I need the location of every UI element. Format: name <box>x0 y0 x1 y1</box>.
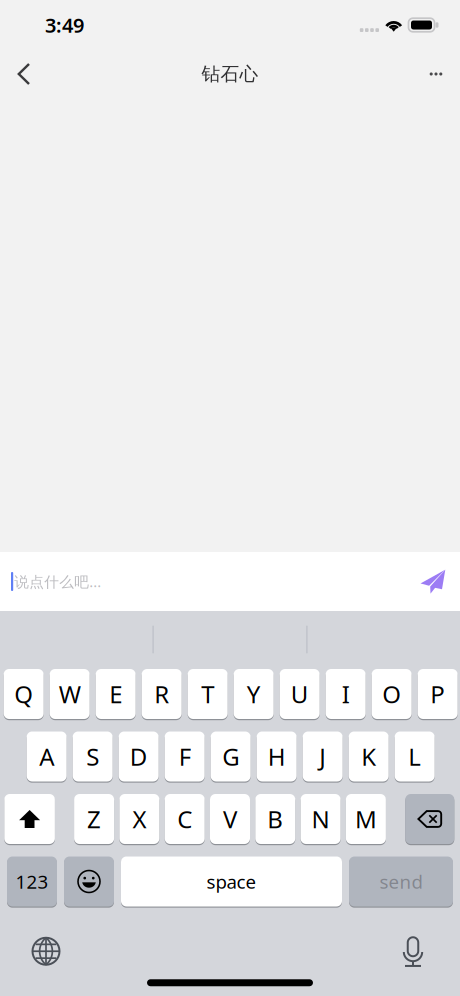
staticText: Q <box>14 678 33 710</box>
button[interactable]: V <box>210 793 250 845</box>
staticText: I <box>342 678 350 710</box>
button[interactable]: Emoji <box>64 856 114 907</box>
button[interactable]: B <box>255 793 295 845</box>
staticText: F <box>179 741 191 772</box>
staticText: L <box>408 741 421 772</box>
staticText: E <box>109 678 122 710</box>
staticText: U <box>291 678 309 710</box>
staticText: G <box>222 741 239 772</box>
staticText: R <box>154 678 169 710</box>
button[interactable]: Send message <box>412 555 454 607</box>
button[interactable]: C <box>165 793 205 845</box>
staticText: T <box>201 678 214 710</box>
button[interactable]: D <box>119 731 159 782</box>
staticText: 3:49 <box>45 12 84 38</box>
button[interactable]: More options <box>413 51 459 97</box>
staticText: V <box>223 803 237 835</box>
button[interactable]: E <box>96 668 136 720</box>
button[interactable]: I <box>326 668 366 720</box>
staticText: send <box>379 869 422 894</box>
button[interactable]: Shift <box>4 793 55 845</box>
button[interactable]: N <box>301 793 341 845</box>
staticText: A <box>39 741 54 772</box>
button[interactable]: Back <box>1 51 47 97</box>
staticText: W <box>59 678 81 710</box>
staticText: C <box>177 803 192 835</box>
staticText: N <box>312 803 330 835</box>
staticText: space <box>206 869 256 894</box>
staticText: S <box>86 741 99 772</box>
button[interactable]: X <box>119 793 159 845</box>
staticText: B <box>267 803 283 835</box>
staticText: 123 <box>15 869 48 894</box>
button[interactable]: Y <box>234 668 274 720</box>
staticText: K <box>361 741 376 772</box>
button[interactable]: space <box>121 856 342 907</box>
button[interactable]: M <box>346 793 386 845</box>
button[interactable]: T <box>188 668 228 720</box>
button[interactable]: F <box>165 731 205 782</box>
button[interactable]: Dictate <box>391 936 435 966</box>
button[interactable]: U <box>280 668 320 720</box>
button[interactable]: A <box>27 731 67 782</box>
button[interactable]: 123 <box>7 856 57 907</box>
button[interactable]: J <box>303 731 343 782</box>
button[interactable]: Q <box>4 668 44 720</box>
staticText: M <box>355 803 377 835</box>
staticText: D <box>130 741 148 772</box>
staticText: H <box>268 741 286 772</box>
button[interactable]: Delete <box>405 793 454 845</box>
staticText: P <box>430 678 445 710</box>
button[interactable]: L <box>395 731 435 782</box>
staticText: X <box>132 803 146 835</box>
button[interactable]: R <box>142 668 182 720</box>
staticText: 说点什么吧... <box>14 572 101 591</box>
button[interactable]: S <box>73 731 113 782</box>
staticText: 钻石心 <box>201 62 258 85</box>
staticText: J <box>319 741 326 772</box>
button[interactable]: Z <box>74 793 114 845</box>
staticText: Z <box>87 803 101 835</box>
button[interactable]: send <box>349 856 453 907</box>
button[interactable]: H <box>257 731 297 782</box>
staticText: O <box>382 678 401 710</box>
staticText: Y <box>247 678 261 710</box>
button[interactable]: G <box>211 731 251 782</box>
button[interactable]: P <box>418 668 458 720</box>
button[interactable]: Next keyboard <box>24 936 68 966</box>
button[interactable]: K <box>349 731 389 782</box>
button[interactable]: W <box>50 668 90 720</box>
button[interactable]: O <box>372 668 412 720</box>
